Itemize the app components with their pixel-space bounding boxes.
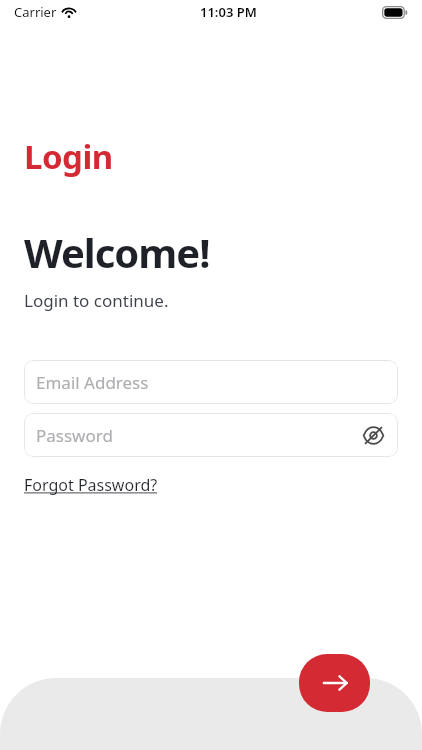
staticText: Welcome! (24, 225, 210, 279)
button[interactable]: Password (24, 413, 398, 457)
staticText: 11:03 PM (200, 3, 257, 21)
button[interactable]: Continue (299, 654, 370, 712)
button[interactable]: Show password (360, 422, 386, 448)
button[interactable]: Email Address (24, 360, 398, 404)
staticText: Carrier (14, 3, 57, 21)
staticText: Login (24, 134, 113, 179)
staticText: Login to continue. (24, 289, 169, 312)
staticText: Email Address (36, 371, 386, 394)
button[interactable]: Forgot Password? (24, 474, 158, 496)
staticText: Forgot Password? (24, 474, 158, 496)
staticText: Password (36, 424, 360, 447)
